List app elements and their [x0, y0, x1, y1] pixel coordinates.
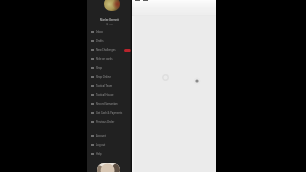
- button[interactable]: New Challenges: [87, 45, 132, 54]
- staticText: Inbox: [96, 30, 103, 34]
- staticText: Tactical House: [96, 93, 114, 97]
- staticText: Account: [96, 134, 106, 138]
- button[interactable]: Shop Online: [87, 72, 132, 81]
- button[interactable]: Inbox: [87, 27, 132, 36]
- button[interactable]: Help: [87, 149, 132, 158]
- staticText: New Challenges: [96, 48, 116, 52]
- button[interactable]: Record Samaritan: [87, 99, 132, 108]
- staticText: Tactical Team: [96, 84, 113, 88]
- button[interactable]: Log out: [87, 140, 132, 149]
- staticText: ▼ 1.25: [87, 23, 132, 26]
- button[interactable]: Account: [87, 131, 132, 140]
- staticText: Ride on cards: [96, 57, 113, 61]
- staticText: Log out: [96, 143, 106, 147]
- button[interactable]: Drafts: [87, 36, 132, 45]
- button[interactable]: Tactical Team: [87, 81, 132, 90]
- button[interactable]: Ride on cards: [87, 54, 132, 63]
- staticText: Help: [96, 152, 102, 156]
- button[interactable]: Previous Order: [87, 117, 132, 126]
- staticText: Get Cash & Payments: [96, 111, 123, 115]
- button[interactable]: Shop: [87, 63, 132, 72]
- staticText: Marlee Bennett: [87, 18, 132, 22]
- staticText: Previous Order: [96, 120, 115, 124]
- button[interactable]: Tactical House: [87, 90, 132, 99]
- staticText: Record Samaritan: [96, 102, 118, 106]
- staticText: Shop Online: [96, 75, 111, 79]
- staticText: Shop: [96, 66, 103, 70]
- staticText: Drafts: [96, 39, 104, 43]
- button[interactable]: Get Cash & Payments: [87, 108, 132, 117]
